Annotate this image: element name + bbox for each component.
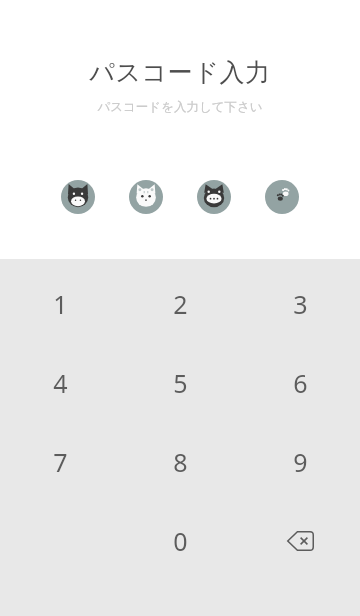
button[interactable]: 0 <box>120 501 240 580</box>
button[interactable]: 3 <box>240 264 360 343</box>
button[interactable]: Backspace <box>240 501 360 580</box>
staticText: 9 <box>293 445 308 479</box>
staticText: 8 <box>173 445 188 479</box>
button[interactable]: 5 <box>120 343 240 422</box>
button[interactable]: 6 <box>240 343 360 422</box>
staticText: 4 <box>53 366 68 400</box>
staticText: 5 <box>173 366 188 400</box>
button[interactable]: 2 <box>120 264 240 343</box>
staticText: 2 <box>173 287 188 321</box>
staticText: 7 <box>53 445 68 479</box>
button[interactable]: 1 <box>0 264 120 343</box>
button[interactable]: Passcode character 1 <box>61 180 95 214</box>
button[interactable]: 7 <box>0 422 120 501</box>
button[interactable]: Passcode character 2 <box>129 180 163 214</box>
staticText: 0 <box>173 524 188 558</box>
button[interactable]: 8 <box>120 422 240 501</box>
staticText: パスコード入力 <box>89 57 271 88</box>
button[interactable]: 9 <box>240 422 360 501</box>
button[interactable]: 4 <box>0 343 120 422</box>
button[interactable]: Passcode character 4 <box>265 180 299 214</box>
button[interactable]: Passcode character 3 <box>197 180 231 214</box>
staticText: 3 <box>293 287 308 321</box>
staticText: パスコードを入力して下さい <box>97 99 263 115</box>
staticText: 1 <box>53 287 68 321</box>
staticText: 6 <box>293 366 308 400</box>
